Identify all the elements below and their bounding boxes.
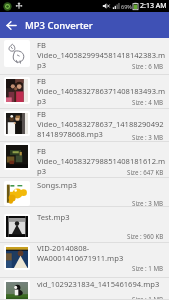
staticText: VID-20140808-WA0001410671911.mp3 xyxy=(37,243,167,263)
button[interactable]: vid_1029231834_1415461694.mp3 xyxy=(0,278,169,300)
staticText: Test.mp3 xyxy=(37,212,167,222)
staticText: Size : 4 MB xyxy=(132,98,164,106)
staticText: Size : 647 KB xyxy=(127,168,164,176)
button[interactable]: FB Video_1405829994581418142383.mp3 xyxy=(0,38,169,75)
staticText: vid_1029231834_1415461694.mp3 xyxy=(37,279,167,289)
staticText: 69% xyxy=(121,3,132,10)
staticText: Size : 3 MB xyxy=(132,199,164,207)
staticText: FB Video_1405832798851408181612.mp3 xyxy=(37,146,167,176)
staticText: FB Video_140583278637_141882904928141897… xyxy=(37,109,167,139)
staticText: MP3 Converter xyxy=(25,19,93,32)
staticText: Size : 1 MB xyxy=(132,264,164,272)
staticText: FB Video_1405832786371408183493.mp3 xyxy=(37,76,167,106)
staticText: Songs.mp3 xyxy=(37,180,167,190)
button[interactable]: Test.mp3 xyxy=(0,207,169,243)
staticText: Size : 960 KB xyxy=(127,232,164,240)
button[interactable]: FB Video_140583278637_141882904928141897… xyxy=(0,109,169,142)
staticText: FB Video_1405829994581418142383.mp3 xyxy=(37,40,167,70)
button[interactable]: VID-20140808-WA0001410671911.mp3 xyxy=(0,243,169,278)
staticText: Size : 3 MB xyxy=(132,133,164,141)
staticText: 2:13 AM xyxy=(140,1,167,11)
staticText: Size : 1 MB xyxy=(132,295,164,300)
button[interactable]: FB Video_1405832786371408183493.mp3 xyxy=(0,75,169,109)
button[interactable]: Songs.mp3 xyxy=(0,178,169,207)
button[interactable]: FB Video_1405832798851408181612.mp3 xyxy=(0,142,169,178)
staticText: Size : 6 MB xyxy=(132,62,164,70)
button[interactable]: Back xyxy=(0,14,23,37)
